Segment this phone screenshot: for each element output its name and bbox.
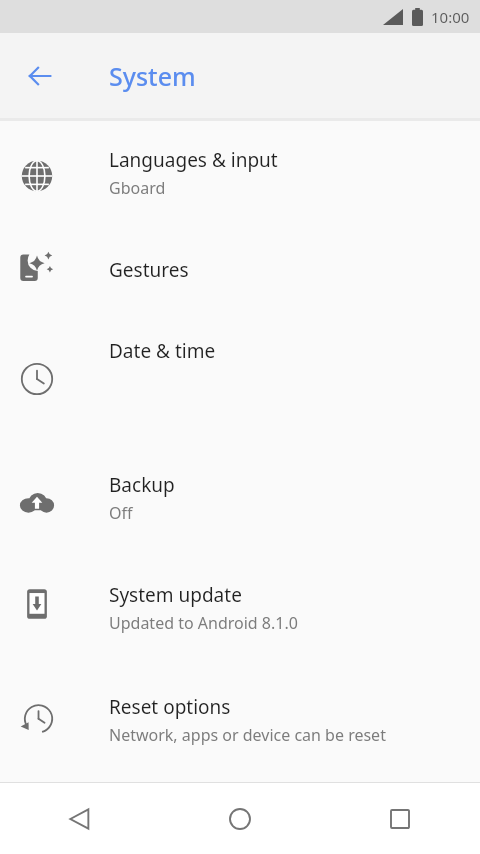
button[interactable]: Recent apps [320, 783, 480, 854]
staticText: Backup [109, 472, 175, 498]
staticText: Updated to Android 8.1.0 [109, 612, 298, 634]
button[interactable]: Back [14, 50, 66, 102]
button[interactable]: Back [0, 783, 160, 854]
staticText: Gboard [109, 177, 166, 199]
button[interactable] [0, 454, 480, 526]
staticText: System update [109, 582, 242, 608]
button[interactable] [0, 320, 480, 392]
staticText: System [109, 59, 196, 93]
button[interactable]: Home [160, 783, 320, 854]
staticText: Off [109, 502, 133, 524]
staticText: Languages & input [109, 147, 278, 173]
staticText: Date & time [109, 338, 216, 364]
button[interactable] [0, 129, 480, 201]
staticText: Gestures [109, 257, 189, 283]
button[interactable] [0, 239, 480, 311]
staticText: 10:00 [431, 7, 470, 27]
button[interactable] [0, 676, 480, 748]
button[interactable] [0, 564, 480, 636]
staticText: Reset options [109, 694, 231, 720]
staticText: Network, apps or device can be reset [109, 724, 386, 746]
